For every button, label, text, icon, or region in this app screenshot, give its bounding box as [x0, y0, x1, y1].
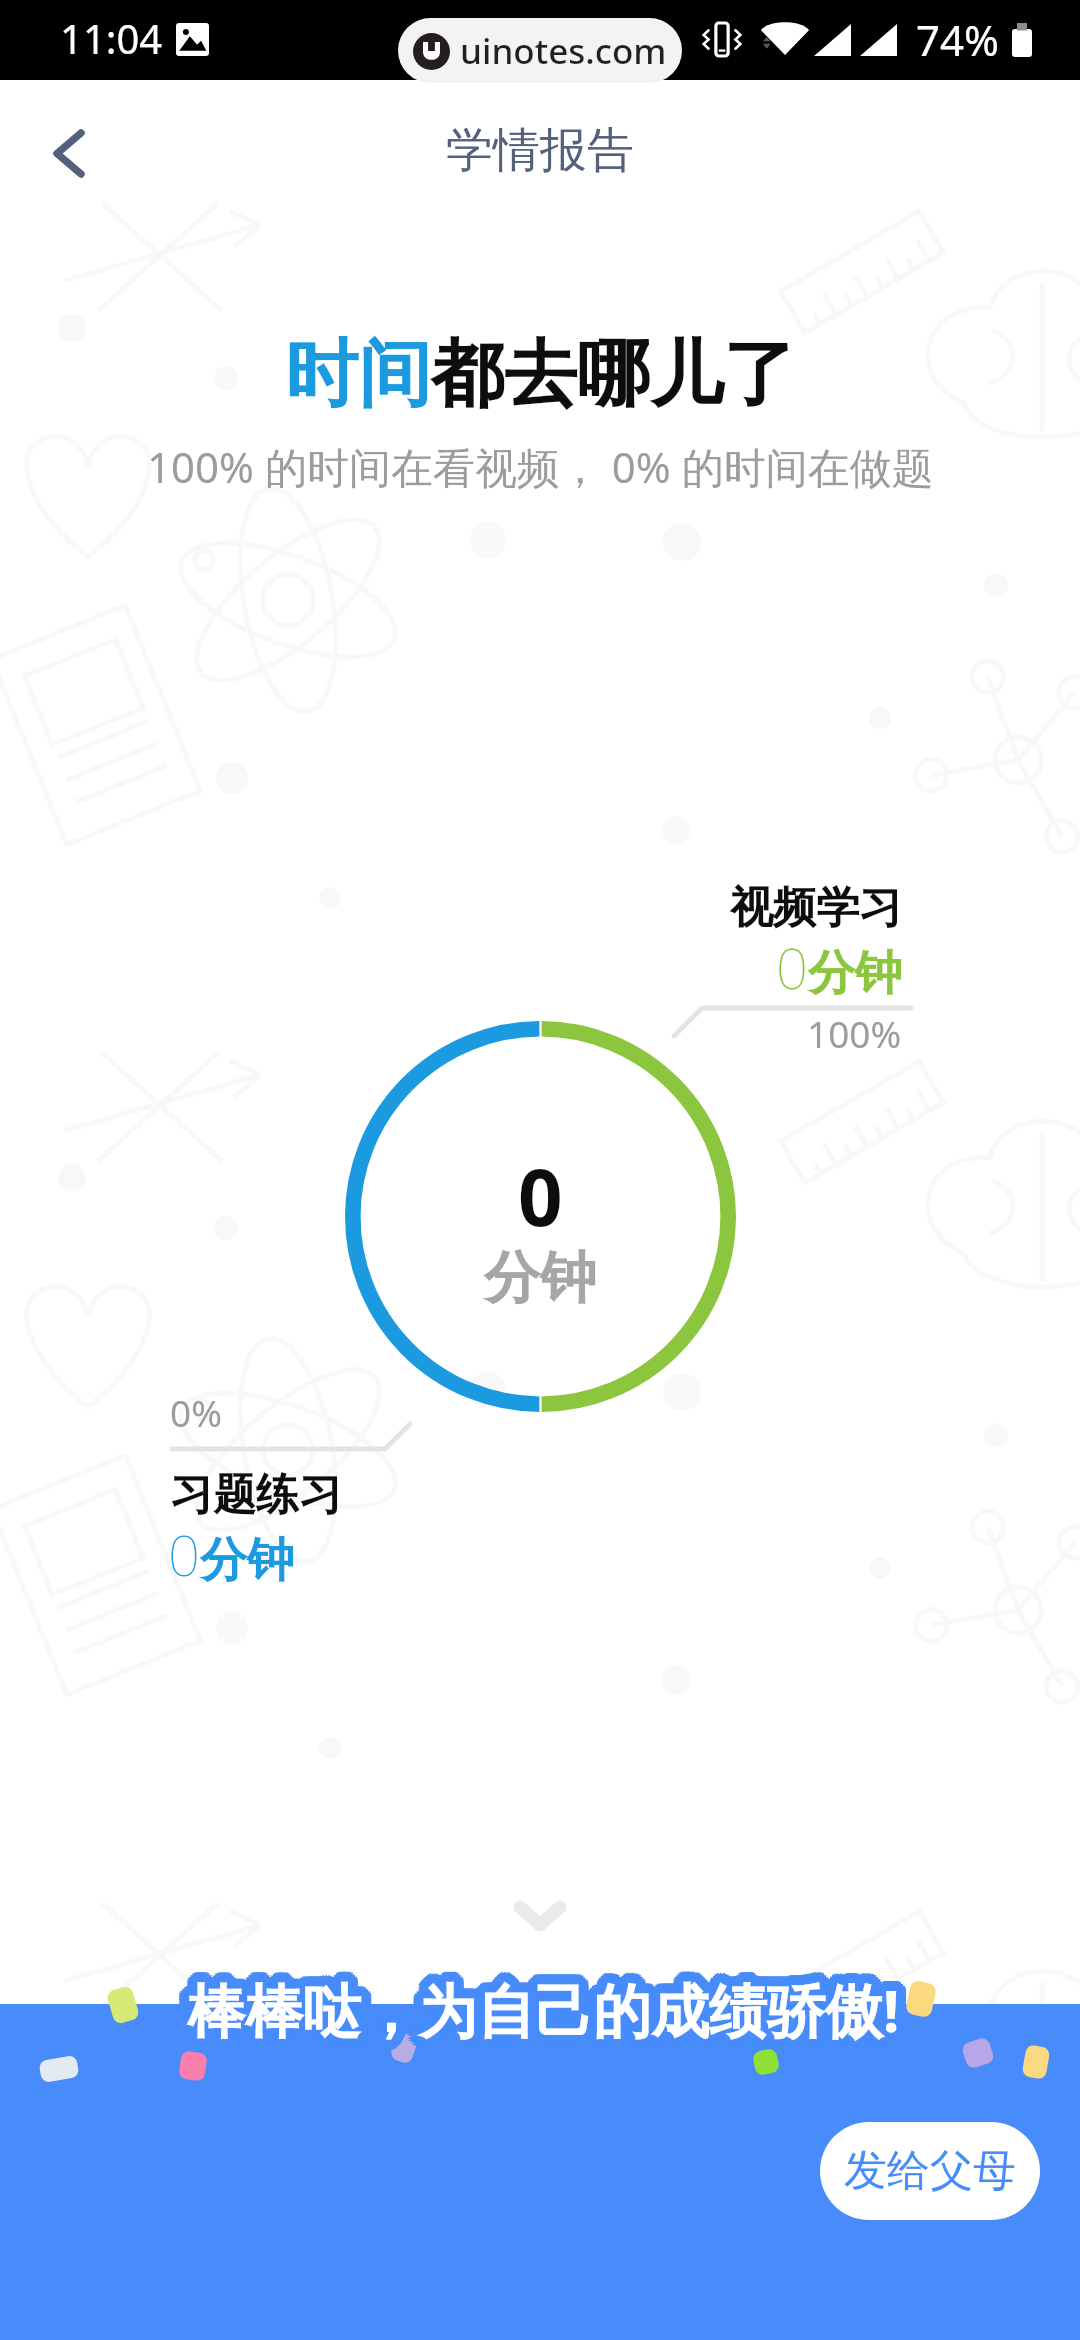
staticText: 100% 的时间在看视频， 0% 的时间在做题 — [147, 438, 934, 495]
staticText: 棒棒哒，为自己的成绩骄傲! — [197, 1970, 910, 2049]
staticText: 棒棒哒，为自己的成绩骄傲! — [193, 1972, 906, 2051]
staticText: 棒棒哒，为自己的成绩骄傲! — [191, 1974, 904, 2053]
staticText: 棒棒哒，为自己的成绩骄傲! — [187, 1960, 900, 2039]
staticText: 棒棒哒，为自己的成绩骄傲! — [182, 1979, 895, 2058]
staticText: 棒棒哒，为自己的成绩骄傲! — [184, 1965, 897, 2044]
staticText: 棒棒哒，为自己的成绩骄傲! — [177, 1970, 890, 2049]
staticText: 棒棒哒，为自己的成绩骄傲! — [184, 1980, 897, 2059]
staticText: 棒棒哒，为自己的成绩骄傲! — [192, 1961, 905, 2040]
staticText: 棒棒哒，为自己的成绩骄傲! — [178, 1965, 891, 2044]
staticText: 棒棒哒，为自己的成绩骄傲! — [187, 1964, 900, 2043]
staticText: 棒棒哒，为自己的成绩骄傲! — [185, 1964, 898, 2043]
staticText: 11:04 — [60, 11, 163, 65]
staticText: 棒棒哒，为自己的成绩骄傲! — [187, 1976, 900, 2055]
staticText: 棒棒哒，为自己的成绩骄傲! — [185, 1976, 898, 2055]
staticText: 棒棒哒，为自己的成绩骄傲! — [181, 1968, 894, 2047]
staticText: 棒棒哒，为自己的成绩骄傲! — [190, 1975, 903, 2054]
staticText: 棒棒哒，为自己的成绩骄傲! — [182, 1973, 895, 2052]
staticText: 棒棒哒，为自己的成绩骄傲! — [196, 1965, 909, 2044]
staticText: 0分钟 — [168, 1516, 294, 1592]
button[interactable]: 发给父母 — [820, 2122, 1040, 2220]
staticText: 棒棒哒，为自己的成绩骄傲! — [197, 1973, 910, 2052]
staticText: 棒棒哒，为自己的成绩骄傲! — [182, 1967, 895, 2046]
staticText: 棒棒哒，为自己的成绩骄傲! — [190, 1960, 903, 2039]
staticText: 棒棒哒，为自己的成绩骄傲! — [192, 1973, 905, 2052]
staticText: 习题练习 — [170, 1468, 342, 1522]
staticText: 发给父母 — [844, 2144, 1016, 2198]
staticText: 棒棒哒，为自己的成绩骄傲! — [196, 1975, 909, 2054]
staticText: 棒棒哒，为自己的成绩骄傲! — [182, 1961, 895, 2040]
staticText: 棒棒哒，为自己的成绩骄傲! — [189, 1964, 902, 2043]
staticText: 分钟 — [484, 1243, 596, 1314]
staticText: 棒棒哒，为自己的成绩骄傲! — [190, 1965, 903, 2044]
staticText: 棒棒哒，为自己的成绩骄傲! — [193, 1970, 906, 2049]
staticText: 0 — [518, 1143, 563, 1249]
staticText: 棒棒哒，为自己的成绩骄傲! — [180, 1963, 893, 2042]
staticText: uinotes.com — [460, 27, 667, 75]
staticText: 棒棒哒，为自己的成绩骄傲! — [177, 1973, 890, 2052]
staticText: 学情报告 — [446, 121, 634, 180]
staticText: 棒棒哒，为自己的成绩骄傲! — [194, 1977, 907, 2056]
staticText: 棒棒哒，为自己的成绩骄傲! — [192, 1979, 905, 2058]
staticText: 0分钟 — [776, 929, 902, 1005]
staticText: 74% — [916, 11, 999, 68]
staticText: 棒棒哒，为自己的成绩骄傲! — [197, 1967, 910, 2046]
staticText: 棒棒哒，为自己的成绩骄傲! — [177, 1967, 890, 2046]
staticText: 0% — [170, 1387, 222, 1437]
staticText: 棒棒哒，为自己的成绩骄傲! — [180, 1977, 893, 2056]
staticText: 棒棒哒，为自己的成绩骄傲! — [190, 1980, 903, 2059]
staticText: 视频学习 — [730, 881, 902, 935]
staticText: 时间都去哪儿了 — [285, 329, 796, 421]
staticText: 棒棒哒，为自己的成绩骄傲! — [181, 1970, 894, 2049]
staticText: 棒棒哒，为自己的成绩骄傲! — [187, 1970, 900, 2049]
staticText: 棒棒哒，为自己的成绩骄傲! — [183, 1974, 896, 2053]
staticText: 棒棒哒，为自己的成绩骄傲! — [183, 1966, 896, 2045]
staticText: 棒棒哒，为自己的成绩骄傲! — [189, 1976, 902, 2055]
staticText: 棒棒哒，为自己的成绩骄傲! — [184, 1975, 897, 2054]
button[interactable]: Back — [29, 113, 109, 193]
staticText: 棒棒哒，为自己的成绩骄傲! — [181, 1972, 894, 2051]
staticText: 棒棒哒，为自己的成绩骄傲! — [194, 1963, 907, 2042]
staticText: 棒棒哒，为自己的成绩骄傲! — [178, 1975, 891, 2054]
staticText: 100% — [807, 1008, 902, 1058]
staticText: 棒棒哒，为自己的成绩骄傲! — [192, 1967, 905, 2046]
button[interactable]: Show more — [485, 1874, 595, 1956]
staticText: 棒棒哒，为自己的成绩骄傲! — [187, 1980, 900, 2059]
staticText: 棒棒哒，为自己的成绩骄傲! — [191, 1966, 904, 2045]
staticText: 棒棒哒，为自己的成绩骄傲! — [184, 1960, 897, 2039]
staticText: 棒棒哒，为自己的成绩骄傲! — [193, 1968, 906, 2047]
